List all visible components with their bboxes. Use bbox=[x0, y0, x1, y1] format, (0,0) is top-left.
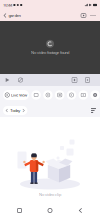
button[interactable]: Quick action bbox=[55, 90, 64, 100]
button[interactable]: Video quality bbox=[68, 74, 81, 86]
button[interactable]: Recent apps bbox=[8, 204, 30, 217]
button[interactable]: Quick action bbox=[43, 90, 53, 100]
staticText: 10:44 bbox=[3, 2, 12, 8]
button[interactable]: Today bbox=[3, 106, 27, 115]
staticText: Today bbox=[10, 108, 20, 113]
staticText: No video clip bbox=[39, 192, 61, 197]
button[interactable]: Quick action bbox=[31, 90, 41, 100]
button[interactable]: Quick action bbox=[67, 90, 76, 100]
button[interactable]: Live View bbox=[3, 90, 29, 100]
button[interactable]: Snapshot bbox=[81, 74, 94, 86]
staticText: garden bbox=[8, 13, 20, 18]
button[interactable]: More options bbox=[88, 10, 98, 21]
button[interactable]: Quick action bbox=[79, 90, 88, 100]
button[interactable]: Filter bbox=[88, 105, 99, 115]
button[interactable]: Back bbox=[69, 204, 91, 217]
staticText: No video footage found bbox=[31, 50, 69, 55]
button[interactable]: Play bbox=[1, 74, 14, 86]
button[interactable]: Quick action bbox=[90, 90, 100, 100]
button[interactable]: Cast bbox=[79, 10, 88, 21]
button[interactable]: garden bbox=[0, 10, 23, 21]
staticText: Live View bbox=[11, 92, 27, 98]
button[interactable]: Home bbox=[39, 204, 61, 217]
button[interactable]: Mute bbox=[14, 74, 27, 86]
